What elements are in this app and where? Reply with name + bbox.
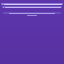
button[interactable] bbox=[2, 6, 62, 8]
button[interactable] bbox=[1, 3, 63, 5]
button[interactable]: More bbox=[27, 15, 37, 16]
button[interactable]: Open item bbox=[3, 12, 61, 14]
